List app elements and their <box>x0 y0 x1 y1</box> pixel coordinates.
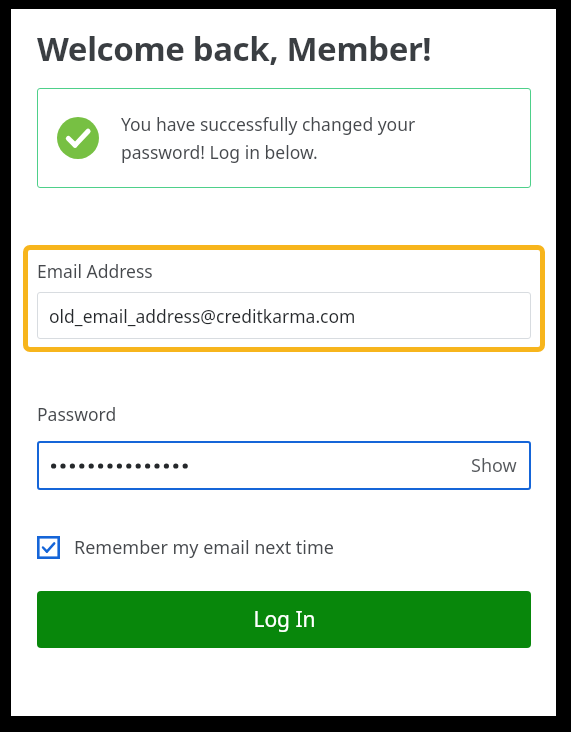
staticText: Email Address <box>37 259 153 283</box>
button[interactable]: Email Address <box>28 250 540 347</box>
button[interactable]: Show <box>37 441 531 490</box>
button[interactable]: Log In <box>37 591 531 648</box>
staticText: old_email_address@creditkarma.com <box>49 304 356 328</box>
staticText: Remember my email next time <box>74 535 334 560</box>
staticText: Welcome back, Member! <box>37 26 432 71</box>
staticText: Password <box>37 402 117 426</box>
staticText: Log In <box>253 605 316 634</box>
button[interactable]: Show <box>457 453 531 478</box>
staticText: You have successfully changed your passw… <box>121 112 416 164</box>
staticText: Show <box>471 453 517 478</box>
button[interactable]: Remember my email next time <box>37 535 334 560</box>
